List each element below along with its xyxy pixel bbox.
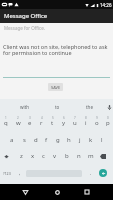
button[interactable]: Message Office xyxy=(0,9,113,23)
button[interactable]: Home xyxy=(48,184,66,200)
staticText: 14:26 xyxy=(100,2,112,8)
staticText: 2 xyxy=(17,116,19,120)
button[interactable]: Backspace xyxy=(97,149,113,163)
staticText: with xyxy=(20,104,30,110)
button[interactable]: v xyxy=(49,149,61,163)
staticText: u xyxy=(73,119,77,127)
button[interactable]: k xyxy=(85,133,96,147)
staticText: 3 xyxy=(29,116,31,120)
staticText: 8 xyxy=(85,116,87,120)
staticText: j xyxy=(79,136,81,144)
button[interactable]: n xyxy=(73,149,85,163)
button[interactable]: Comma xyxy=(14,166,26,180)
button[interactable]: 6 xyxy=(58,116,69,130)
staticText: k xyxy=(89,136,93,144)
button[interactable]: s xyxy=(18,133,30,147)
staticText: g xyxy=(56,136,60,144)
button[interactable]: the xyxy=(73,100,105,114)
button[interactable]: SAVE xyxy=(48,83,63,91)
staticText: h xyxy=(67,136,71,144)
staticText: c xyxy=(42,152,45,160)
staticText: s xyxy=(23,136,26,144)
button[interactable]: with xyxy=(9,100,41,114)
staticText: 9 xyxy=(96,116,98,120)
button[interactable]: ?123 xyxy=(0,166,14,180)
button[interactable]: b xyxy=(61,149,73,163)
button[interactable]: Voice input xyxy=(105,100,113,114)
staticText: Message for Office. xyxy=(4,25,45,31)
button[interactable]: c xyxy=(38,149,49,163)
button[interactable]: 8 xyxy=(80,116,91,130)
button[interactable]: Shift xyxy=(0,149,16,163)
staticText: o xyxy=(95,119,99,127)
staticText: . xyxy=(90,170,92,177)
staticText: r xyxy=(40,119,43,127)
staticText: v xyxy=(53,152,57,160)
staticText: x xyxy=(31,152,35,160)
button[interactable]: 2 xyxy=(12,116,24,130)
staticText: t xyxy=(51,119,54,127)
button[interactable]: d xyxy=(30,133,41,147)
button[interactable]: Back xyxy=(16,184,34,200)
staticText: a xyxy=(10,136,14,144)
staticText: 1 xyxy=(5,116,7,120)
staticText: f xyxy=(45,136,48,144)
staticText: z xyxy=(20,152,23,160)
button[interactable]: z xyxy=(16,149,27,163)
button[interactable]: 9 xyxy=(91,116,102,130)
button[interactable]: f xyxy=(41,133,52,147)
staticText: , xyxy=(19,170,21,177)
staticText: the xyxy=(86,104,93,110)
staticText: n xyxy=(77,152,81,160)
staticText: l xyxy=(101,136,103,144)
staticText: SAVE xyxy=(51,85,61,90)
button[interactable]: g xyxy=(52,133,63,147)
staticText: d xyxy=(34,136,38,144)
staticText: 0 xyxy=(107,116,109,120)
button[interactable]: x xyxy=(27,149,38,163)
button[interactable]: to xyxy=(41,100,73,114)
staticText: ?123 xyxy=(3,171,11,176)
staticText: e xyxy=(28,119,32,127)
button[interactable]: m xyxy=(85,149,97,163)
staticText: p xyxy=(106,119,110,127)
staticText: 6 xyxy=(63,116,65,120)
staticText: w xyxy=(16,119,21,127)
button[interactable]: l xyxy=(96,133,107,147)
staticText: to xyxy=(55,104,60,110)
button[interactable]: j xyxy=(74,133,85,147)
button[interactable]: h xyxy=(63,133,74,147)
staticText: 4 xyxy=(41,116,43,120)
button[interactable]: a xyxy=(6,133,18,147)
button[interactable]: 0 xyxy=(102,116,113,130)
button[interactable]: Enter xyxy=(99,169,107,177)
staticText: m xyxy=(88,152,94,160)
button[interactable]: 5 xyxy=(47,116,58,130)
staticText: Message Office xyxy=(4,12,48,20)
staticText: 7 xyxy=(74,116,76,120)
staticText: Client was not on site, telephoned to as… xyxy=(3,43,108,57)
button[interactable]: 1 xyxy=(0,116,12,130)
staticText: 5 xyxy=(52,116,54,120)
staticText: b xyxy=(65,152,69,160)
button[interactable]: 4 xyxy=(36,116,47,130)
button[interactable]: Recents xyxy=(78,184,96,200)
staticText: q xyxy=(4,119,8,127)
button[interactable]: 7 xyxy=(69,116,80,130)
button[interactable]: 3 xyxy=(24,116,36,130)
staticText: y xyxy=(62,119,66,127)
staticText: i xyxy=(85,119,87,127)
